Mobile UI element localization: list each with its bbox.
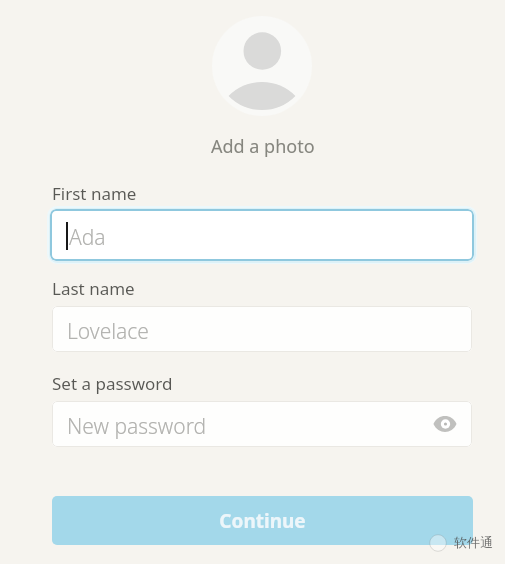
button[interactable]: Continue <box>52 496 473 545</box>
staticText: 软件通 <box>454 534 493 550</box>
staticText: New password <box>67 412 207 441</box>
staticText: Add a photo <box>211 134 315 159</box>
button[interactable]: Show password <box>429 408 461 440</box>
staticText: Set a password <box>52 372 173 395</box>
button[interactable]: Lovelace <box>52 306 472 352</box>
staticText: First name <box>52 182 137 205</box>
staticText: Continue <box>219 508 306 534</box>
button[interactable]: Add a photo <box>212 16 312 116</box>
button[interactable]: Ada <box>50 209 474 261</box>
button[interactable]: New password <box>52 401 472 447</box>
staticText: Lovelace <box>67 317 149 346</box>
staticText: Ada <box>69 223 106 252</box>
staticText: Last name <box>52 277 135 300</box>
